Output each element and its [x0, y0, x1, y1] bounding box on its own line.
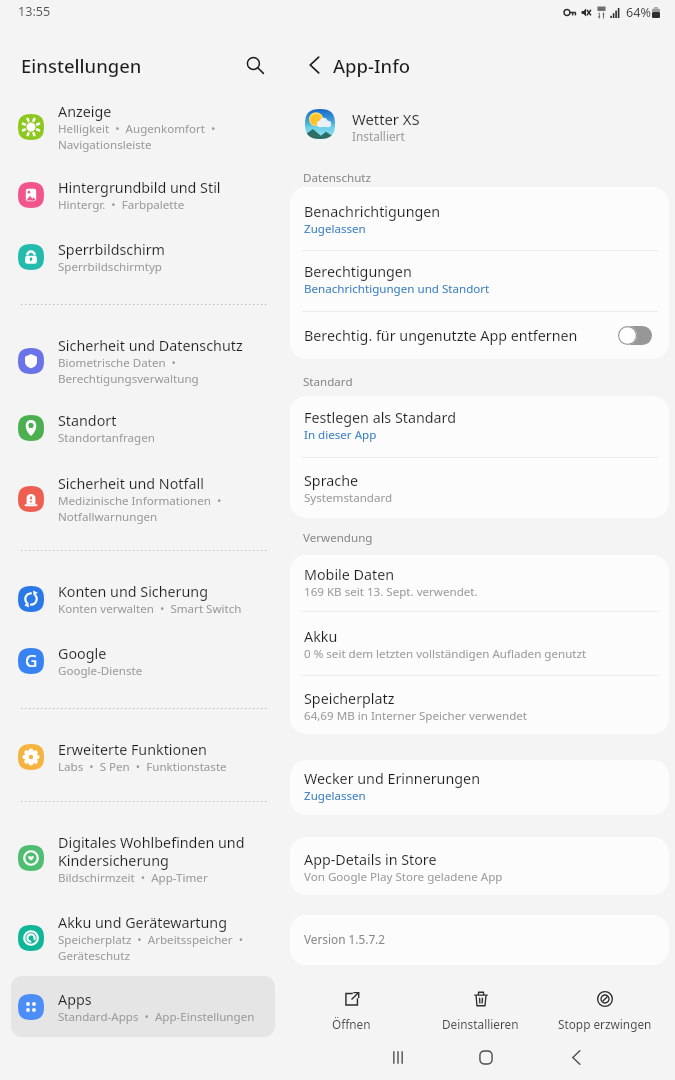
staticText: Deinstallieren: [442, 1016, 519, 1032]
staticText: Zugelassen: [304, 788, 366, 804]
button[interactable]: Deinstallieren: [418, 984, 542, 1032]
button[interactable]: Sicherheit und Notfall: [11, 468, 275, 530]
button[interactable]: Stopp erzwingen: [543, 984, 667, 1032]
staticText: Mobile Daten: [304, 565, 395, 584]
staticText: Speicherplatz: [304, 689, 395, 708]
staticText: In dieser App: [304, 427, 377, 443]
staticText: 0 % seit dem letzten vollständigen Aufla…: [304, 646, 587, 662]
staticText: Installiert: [352, 128, 405, 144]
staticText: Sperrbildschirmtyp: [58, 259, 162, 275]
staticText: Verwendung: [303, 530, 373, 546]
button[interactable]: Sicherheit und Datenschutz: [11, 330, 275, 392]
staticText: Erweiterte Funktionen: [58, 740, 207, 759]
staticText: Berechtigungen: [304, 262, 412, 281]
staticText: Akku: [304, 627, 338, 646]
button[interactable]: Mobile Daten: [290, 555, 669, 611]
button[interactable]: Berechtigungen: [290, 252, 669, 309]
staticText: Google-Dienste: [58, 663, 143, 679]
button[interactable]: Berechtig. für ungenutzte App entfernen: [290, 311, 669, 359]
staticText: Sperrbildschirm: [58, 240, 165, 259]
staticText: App-Info: [333, 53, 411, 78]
staticText: Wetter XS: [352, 109, 420, 129]
staticText: Systemstandard: [304, 490, 393, 506]
button[interactable]: Letzte Apps: [374, 1033, 422, 1080]
button[interactable]: Apps: [11, 976, 275, 1037]
button[interactable]: App-Details in Store: [290, 839, 669, 895]
button[interactable]: Anzeige: [11, 96, 275, 158]
staticText: Standort: [58, 411, 117, 430]
staticText: G: [25, 649, 38, 672]
button[interactable]: Konten und Sicherung: [11, 568, 275, 629]
button[interactable]: Akku und Gerätewartung: [11, 907, 275, 969]
staticText: Hintergrundbild und Stil: [58, 178, 221, 197]
button[interactable]: Sperrbildschirm: [11, 226, 275, 287]
button[interactable]: Benachrichtigungen: [290, 191, 669, 250]
staticText: Benachrichtigungen und Standort: [304, 281, 490, 297]
staticText: Bildschirmzeit • App-Timer: [58, 870, 208, 886]
button[interactable]: Festlegen als Standard: [290, 396, 669, 457]
button[interactable]: Standort: [11, 397, 275, 458]
staticText: Berechtig. für ungenutzte App entfernen: [304, 326, 618, 345]
staticText: Sicherheit und Notfall: [58, 474, 204, 493]
button[interactable]: Öffnen: [289, 984, 413, 1032]
button[interactable]: Wecker und Erinnerungen: [290, 760, 669, 815]
staticText: Standard-Apps • App-Einstellungen: [58, 1009, 255, 1025]
button[interactable]: Digitales Wohlbefinden und Kindersicheru…: [11, 827, 275, 889]
button[interactable]: Speicherplatz: [290, 678, 669, 734]
button[interactable]: Zurück: [552, 1033, 600, 1080]
staticText: Datenschutz: [303, 170, 371, 186]
staticText: 64,69 MB in Interner Speicher verwendet: [304, 708, 527, 724]
staticText: Stopp erzwingen: [558, 1016, 652, 1032]
button[interactable]: Akku: [290, 613, 669, 677]
staticText: Anzeige: [58, 102, 112, 121]
staticText: 13:55: [18, 3, 51, 20]
staticText: Öffnen: [332, 1016, 371, 1032]
staticText: 169 KB seit 13. Sept. verwendet.: [304, 584, 478, 600]
staticText: Standortanfragen: [58, 430, 155, 446]
staticText: Konten und Sicherung: [58, 582, 208, 601]
staticText: Einstellungen: [21, 53, 142, 78]
staticText: Sicherheit und Datenschutz: [58, 336, 243, 355]
staticText: Labs • S Pen • Funktionstaste: [58, 759, 227, 775]
staticText: Version 1.5.7.2: [304, 931, 386, 947]
button[interactable]: Suchen: [238, 48, 272, 82]
button[interactable]: Zurück: [297, 48, 331, 82]
staticText: App-Details in Store: [304, 850, 437, 869]
staticText: Von Google Play Store geladene App: [304, 869, 503, 885]
staticText: Festlegen als Standard: [304, 408, 457, 427]
button[interactable]: Sprache: [290, 459, 669, 518]
staticText: Akku und Gerätewartung: [58, 913, 227, 932]
button[interactable]: Hintergrundbild und Stil: [11, 164, 275, 225]
staticText: Hintergr. • Farbpalette: [58, 197, 185, 213]
staticText: Zugelassen: [304, 221, 366, 237]
staticText: Helligkeit • Augenkomfort • Navigationsl…: [58, 121, 216, 152]
button[interactable]: G: [11, 630, 275, 691]
staticText: Wecker und Erinnerungen: [304, 769, 480, 788]
staticText: Speicherplatz • Arbeitsspeicher • Geräte…: [58, 932, 244, 963]
button[interactable]: Erweiterte Funktionen: [11, 726, 275, 787]
staticText: Biometrische Daten • Berechtigungsverwal…: [58, 355, 199, 386]
button[interactable]: Startbildschirm: [462, 1033, 510, 1080]
staticText: Konten verwalten • Smart Switch: [58, 601, 242, 617]
staticText: Google: [58, 644, 107, 663]
staticText: Digitales Wohlbefinden und Kindersicheru…: [58, 833, 245, 870]
staticText: Medizinische Informationen • Notfallwarn…: [58, 493, 222, 524]
staticText: Benachrichtigungen: [304, 202, 441, 221]
staticText: 64%: [626, 4, 651, 19]
staticText: Standard: [303, 374, 353, 390]
staticText: Apps: [58, 990, 92, 1009]
staticText: Sprache: [304, 471, 359, 490]
